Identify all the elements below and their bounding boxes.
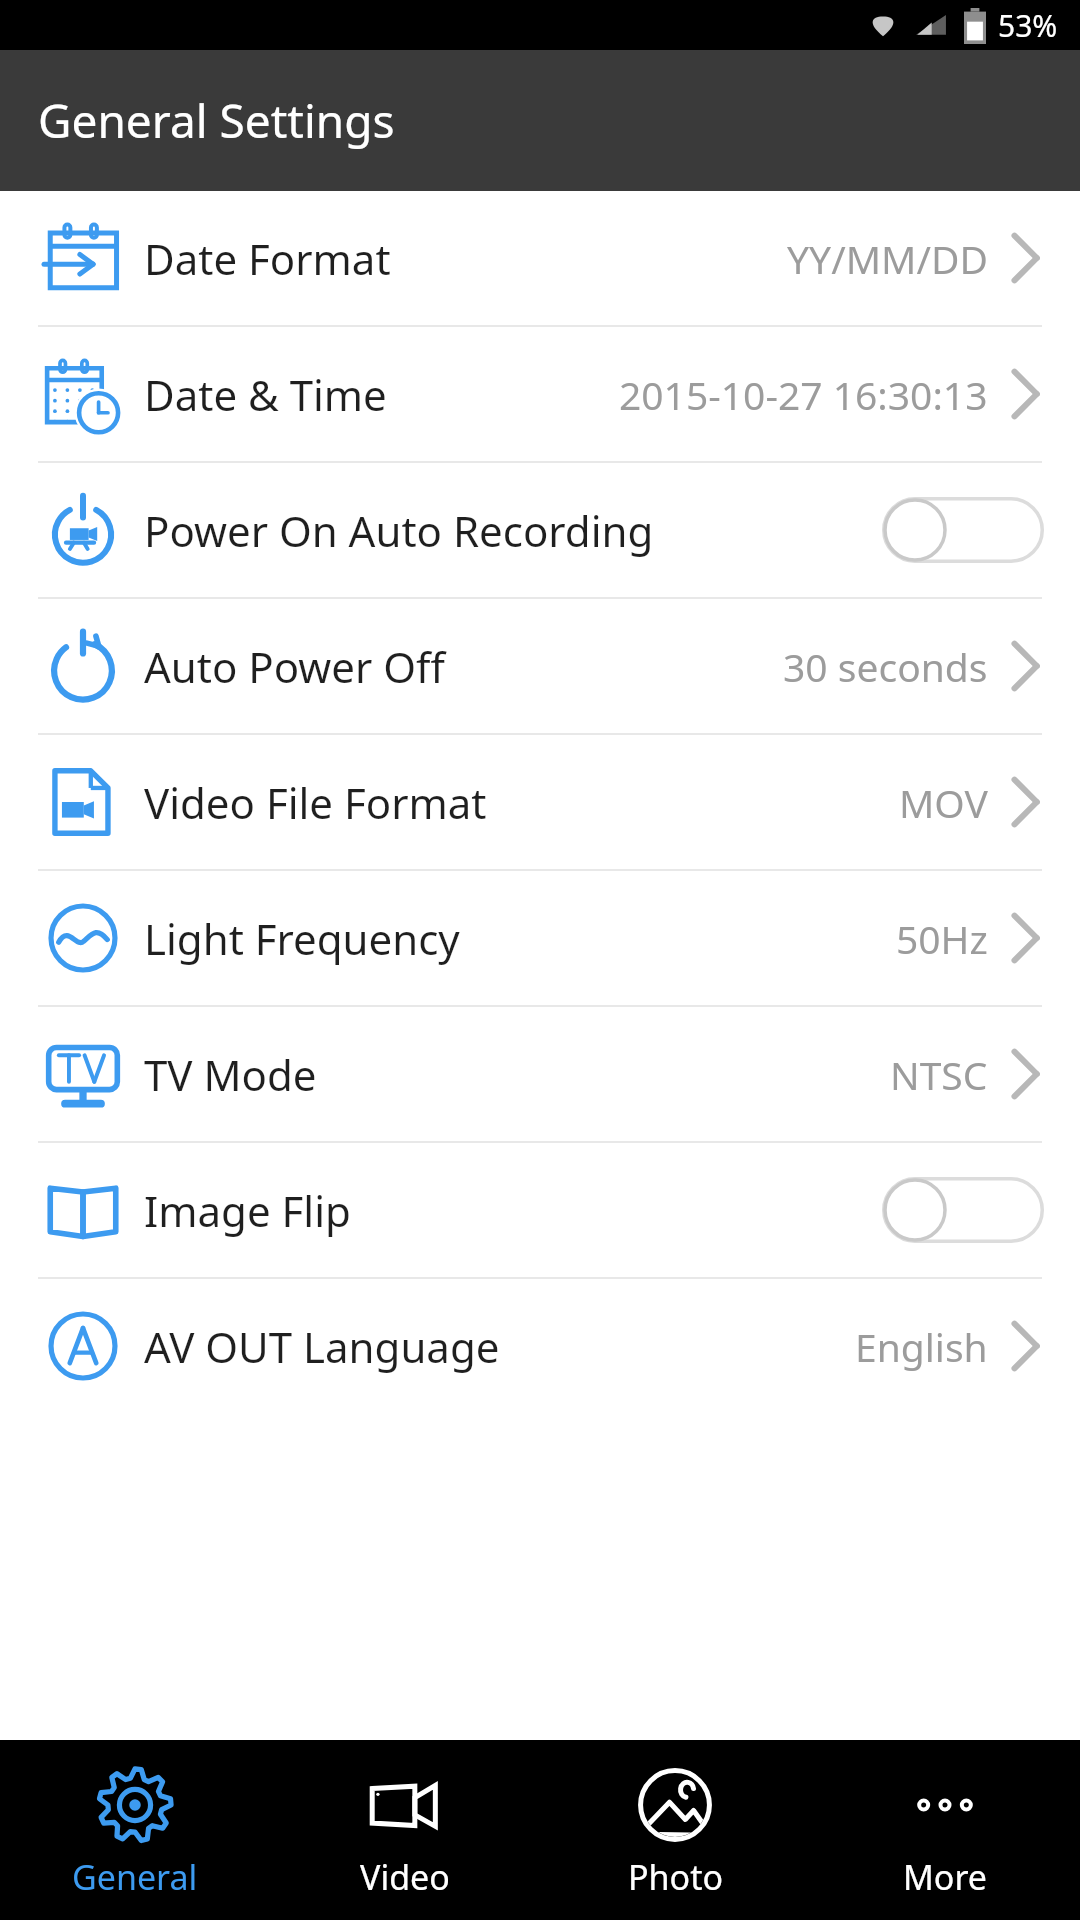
- button[interactable]: Date Format: [0, 191, 1080, 325]
- staticText: Power On Auto Recording: [144, 502, 654, 559]
- staticText: 30 seconds: [783, 640, 988, 693]
- button[interactable]: Toggle off: [882, 497, 1044, 563]
- staticText: TV Mode: [144, 1046, 317, 1103]
- button[interactable]: More: [810, 1740, 1080, 1920]
- staticText: Auto Power Off: [144, 638, 445, 695]
- button[interactable]: Auto Power Off: [0, 599, 1080, 733]
- staticText: Light Frequency: [144, 910, 460, 967]
- button[interactable]: Photo: [540, 1740, 810, 1920]
- button[interactable]: Toggle off: [882, 1177, 1044, 1243]
- staticText: General: [72, 1854, 198, 1900]
- staticText: 53%: [998, 5, 1058, 46]
- staticText: YY/MM/DD: [787, 232, 988, 285]
- staticText: Date & Time: [144, 366, 387, 423]
- staticText: 50Hz: [896, 912, 988, 965]
- button[interactable]: Video File Format: [0, 735, 1080, 869]
- staticText: Video File Format: [144, 774, 487, 831]
- button[interactable]: TV Mode: [0, 1007, 1080, 1141]
- button[interactable]: Image Flip: [0, 1143, 1080, 1277]
- staticText: 2015-10-27 16:30:13: [619, 368, 988, 421]
- staticText: General Settings: [38, 89, 395, 152]
- staticText: Photo: [628, 1854, 723, 1900]
- staticText: Image Flip: [144, 1182, 351, 1239]
- button[interactable]: General: [0, 1740, 270, 1920]
- staticText: Date Format: [144, 230, 391, 287]
- staticText: Video: [360, 1854, 450, 1900]
- staticText: MOV: [899, 776, 988, 829]
- button[interactable]: AV OUT Language: [0, 1279, 1080, 1413]
- staticText: More: [903, 1854, 987, 1900]
- button[interactable]: Power On Auto Recording: [0, 463, 1080, 597]
- staticText: AV OUT Language: [144, 1318, 500, 1375]
- staticText: English: [855, 1320, 988, 1373]
- button[interactable]: Video: [270, 1740, 540, 1920]
- button[interactable]: Date & Time: [0, 327, 1080, 461]
- button[interactable]: Light Frequency: [0, 871, 1080, 1005]
- staticText: NTSC: [890, 1048, 988, 1101]
